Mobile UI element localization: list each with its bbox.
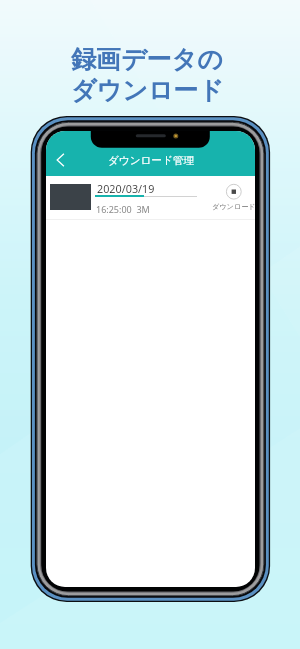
staticText: ダウンロード bbox=[212, 202, 255, 211]
staticText: 録画データの bbox=[71, 44, 223, 75]
staticText: 2020/03/19 bbox=[97, 181, 155, 196]
staticText: 16:25:00 3M bbox=[96, 203, 150, 215]
staticText: ダウンロード管理 bbox=[108, 154, 194, 167]
staticText: ダウンロード bbox=[71, 75, 224, 106]
button[interactable] bbox=[46, 131, 255, 176]
button[interactable]: Back bbox=[48, 148, 72, 172]
button[interactable]: ダウンロード bbox=[212, 181, 255, 211]
